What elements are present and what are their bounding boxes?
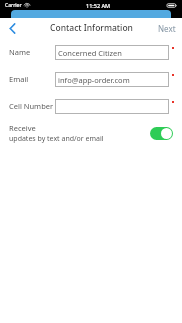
staticText: updates by text and/or email — [9, 134, 104, 144]
button[interactable]: Concerned Citizen — [55, 45, 169, 60]
staticText: Cell Number — [9, 101, 54, 111]
staticText: Name — [9, 47, 31, 57]
staticText: Carrier — [5, 2, 22, 9]
button[interactable]: Back — [3, 19, 21, 37]
button[interactable]: info@app-order.com — [55, 72, 169, 87]
staticText: Receive — [9, 123, 36, 133]
button[interactable]: Receive updates toggle, on — [150, 127, 173, 140]
button[interactable] — [55, 99, 169, 114]
staticText: 11:52 AM — [86, 2, 111, 9]
button[interactable]: Next — [156, 20, 178, 37]
staticText: Contact Information — [50, 22, 133, 34]
staticText: Concerned Citizen — [58, 48, 122, 58]
staticText: info@app-order.com — [58, 75, 130, 85]
staticText: Email — [9, 74, 29, 84]
staticText: Next — [158, 23, 176, 34]
